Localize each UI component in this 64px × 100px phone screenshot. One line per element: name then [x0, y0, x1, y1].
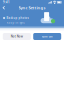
button[interactable]: Turn On: [33, 33, 61, 40]
button[interactable]: Not Now: [3, 33, 31, 40]
staticText: 9:41: [3, 0, 10, 4]
staticText: Back up photos: [7, 16, 29, 20]
staticText: Not Now: [11, 35, 23, 38]
staticText: Turn On: [42, 35, 53, 38]
staticText: Sync Settings: [18, 5, 45, 10]
staticText: Keep in sync: [7, 21, 25, 24]
button[interactable]: Back: [0, 4, 7, 11]
